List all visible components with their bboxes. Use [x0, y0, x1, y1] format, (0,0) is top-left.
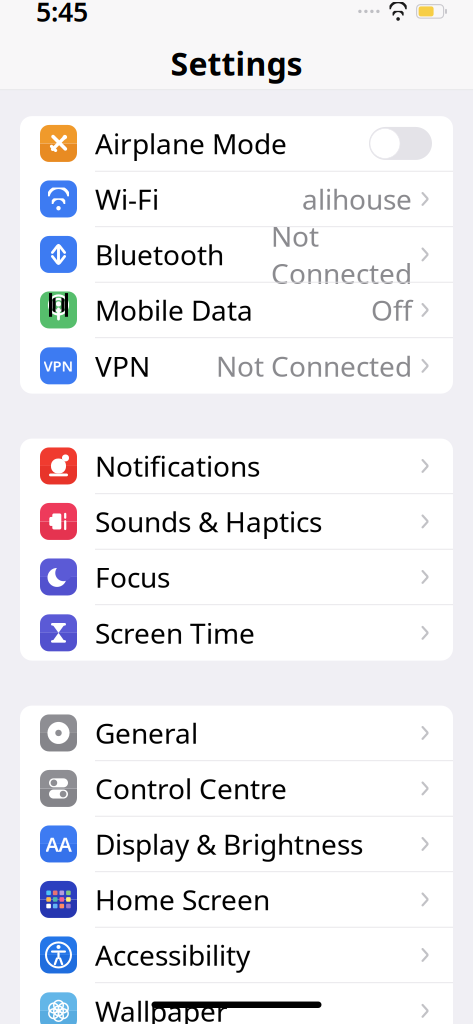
staticText: Wallpaper	[95, 992, 228, 1024]
staticText: Bluetooth	[95, 236, 224, 273]
button[interactable]: Mobile Data	[20, 283, 453, 338]
staticText: AA	[45, 831, 71, 857]
staticText: Off	[371, 291, 412, 329]
button[interactable]: General	[20, 706, 453, 761]
button[interactable]: AA	[20, 817, 453, 872]
staticText: Screen Time	[95, 614, 255, 651]
button[interactable]: Sounds & Haptics	[20, 494, 453, 550]
staticText: Focus	[95, 558, 170, 596]
staticText: Display & Brightness	[95, 825, 363, 863]
staticText: alihouse	[302, 180, 412, 218]
staticText: Control Centre	[95, 770, 287, 807]
button[interactable]: Wi-Fi	[20, 172, 453, 227]
staticText: Sounds & Haptics	[95, 503, 322, 540]
button[interactable]: Screen Time	[20, 605, 453, 661]
button[interactable]: VPN	[20, 338, 453, 394]
button[interactable]: Wallpaper	[20, 983, 453, 1024]
button[interactable]: Control Centre	[20, 761, 453, 817]
staticText: 5:45	[36, 0, 88, 29]
staticText: Mobile Data	[95, 291, 253, 329]
button[interactable]: Home Screen	[20, 872, 453, 928]
button[interactable]: Bluetooth	[20, 227, 453, 283]
staticText: Accessibility	[95, 936, 250, 974]
staticText: Not Connected	[271, 217, 412, 292]
staticText: Airplane Mode	[95, 125, 287, 162]
button[interactable]: Accessibility	[20, 928, 453, 983]
staticText: Notifications	[95, 447, 260, 485]
staticText: Not Connected	[216, 347, 412, 384]
staticText: VPN	[95, 347, 150, 384]
staticText: Settings	[170, 42, 302, 85]
staticText: Wi-Fi	[95, 180, 159, 218]
button[interactable]: Airplane Mode	[20, 116, 453, 172]
staticText: Home Screen	[95, 881, 270, 918]
staticText: General	[95, 714, 198, 752]
button[interactable]: Focus	[20, 550, 453, 605]
button[interactable]: Notifications	[20, 439, 453, 494]
staticText: VPN	[43, 356, 73, 376]
